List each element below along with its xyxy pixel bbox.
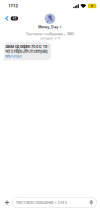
staticText: Money_Day [38, 25, 58, 29]
staticText: Текстовое сообщение • SMS [15, 200, 67, 205]
staticText: Заем одобрен 7000 те- [5, 44, 49, 49]
staticText: Текстовое сообщение • SMS [26, 32, 74, 36]
button[interactable]: Back [0, 13, 21, 23]
button[interactable]: Add attachment [1, 197, 12, 208]
staticText: Сегодня 17:11 [40, 37, 60, 40]
staticText: 88007907 [5, 54, 22, 58]
staticText: 17:12 [8, 3, 17, 8]
staticText: чего https://fin.money/aq [5, 49, 47, 54]
staticText: 48 [12, 17, 16, 20]
button[interactable]: Record audio message [88, 199, 94, 206]
button[interactable]: Money_Day [38, 13, 62, 29]
